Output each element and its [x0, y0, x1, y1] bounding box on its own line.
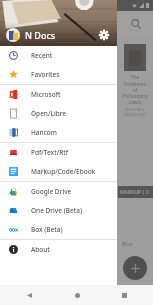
button[interactable]: Microsoft [0, 85, 117, 104]
staticText: Hancom [31, 128, 57, 137]
staticText: Box [122, 240, 133, 248]
button[interactable]: Pdf/Text/Rtf [0, 143, 117, 162]
button[interactable]: Add [123, 256, 147, 280]
button[interactable]: Recents [117, 288, 131, 302]
button[interactable]: Open/Libre [0, 104, 117, 123]
button[interactable]: Google Drive [0, 182, 117, 201]
staticText: About [31, 245, 50, 254]
button[interactable]: Recent [0, 46, 117, 65]
staticText: Markup/Code/Ebook [31, 167, 96, 176]
staticText: Box (Beta) [31, 225, 63, 234]
staticText: MARKUP | 0 [120, 189, 150, 196]
staticText: Open/Libre [31, 109, 67, 118]
button[interactable]: About [0, 240, 117, 259]
button[interactable]: Settings [96, 27, 112, 43]
button[interactable]: Favorites [0, 65, 117, 84]
button[interactable] [124, 44, 146, 71]
staticText: Recent [31, 51, 53, 60]
button[interactable]: Hancom [0, 123, 117, 142]
staticText: Pdf/Text/Rtf [31, 148, 69, 157]
staticText: One Drive (Beta) [31, 206, 82, 215]
button[interactable]: One Drive (Beta) [0, 201, 117, 220]
button[interactable]: Search [127, 15, 145, 33]
button[interactable]: Box (Beta) [0, 220, 117, 239]
button[interactable]: MARKUP | 0 [118, 186, 153, 198]
staticText: 373.4 KB | 05/20/2020 [124, 107, 146, 117]
button[interactable]: Markup/Code/Ebook [0, 162, 117, 181]
button[interactable]: Back [22, 288, 36, 302]
staticText: Google Drive [31, 187, 72, 196]
staticText: N Docs [25, 29, 56, 41]
button[interactable]: Home [70, 288, 84, 302]
staticText: Microsoft [31, 90, 61, 99]
staticText: Favorites [31, 70, 60, 79]
staticText: The Problems of Philosophy Lewis [121, 74, 149, 105]
